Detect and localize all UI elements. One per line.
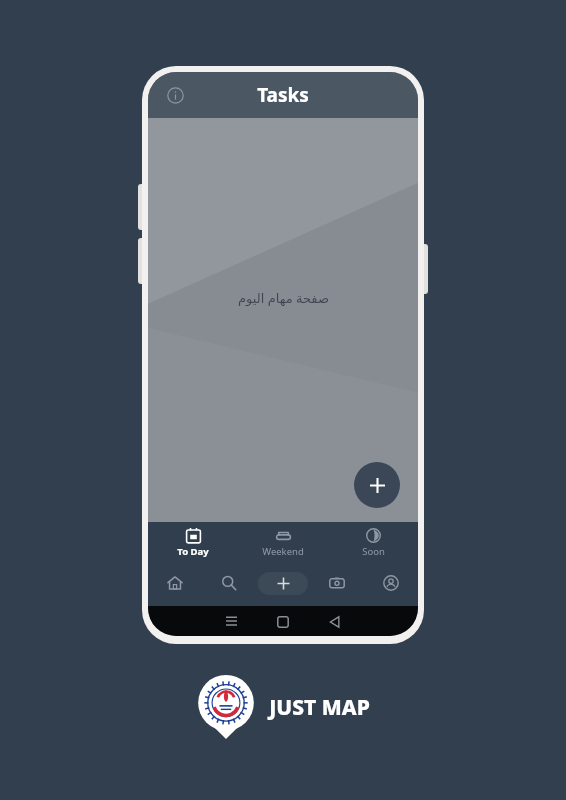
button[interactable]: Home — [148, 564, 202, 602]
button[interactable]: Weekend — [238, 522, 328, 564]
button[interactable]: Home — [257, 616, 309, 628]
staticText: Weekend — [262, 545, 304, 558]
staticText: JUST MAP — [269, 693, 370, 722]
staticText: Tasks — [257, 82, 309, 108]
staticText: صفحة مهام اليوم — [238, 289, 329, 307]
staticText: Soon — [362, 545, 385, 558]
button[interactable]: Back — [309, 616, 361, 628]
button[interactable]: Soon — [328, 522, 418, 564]
button[interactable]: Search — [202, 564, 256, 602]
button[interactable]: To Day — [148, 522, 238, 564]
button[interactable]: Camera — [310, 564, 364, 602]
button[interactable]: Info — [160, 80, 190, 110]
button[interactable]: Add task — [354, 462, 400, 508]
button[interactable]: Recents — [205, 615, 257, 628]
button[interactable]: Add — [258, 572, 308, 595]
button[interactable]: Profile — [364, 564, 418, 602]
staticText: To Day — [177, 545, 209, 558]
